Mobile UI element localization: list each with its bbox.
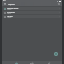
staticText: 12 items <box>7 17 12 18</box>
staticText: Browse <box>30 63 34 64</box>
button[interactable]: You <box>46 61 52 64</box>
staticText: 9:41 <box>3 0 6 2</box>
staticText: 24 items <box>7 9 12 10</box>
staticText: Downloads <box>7 11 15 13</box>
button[interactable]: Open navigation menu <box>3 2 7 6</box>
button[interactable]: Playlists <box>3 15 61 18</box>
staticText: Recently played <box>7 7 19 9</box>
button[interactable]: Downloads <box>3 11 61 14</box>
button[interactable]: Recently played <box>3 7 61 10</box>
button[interactable]: Add <box>54 52 58 56</box>
button[interactable]: Search <box>57 2 61 6</box>
button[interactable]: Browse <box>29 61 35 64</box>
button[interactable]: Home <box>13 61 19 64</box>
staticText: Playlists <box>7 15 13 17</box>
staticText: Home <box>15 63 18 64</box>
staticText: 8 items <box>7 13 11 14</box>
staticText: Library <box>8 3 15 6</box>
